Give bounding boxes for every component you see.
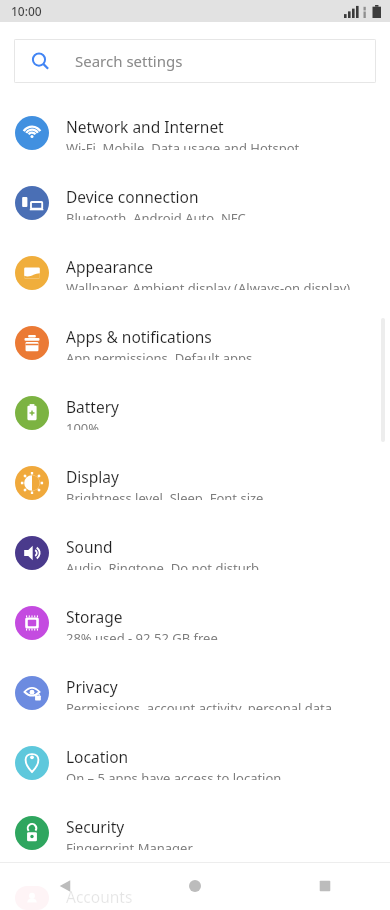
button[interactable]: Display [0, 466, 390, 500]
staticText: Wi-Fi, Mobile, Data usage and Hotspot [66, 139, 300, 150]
button[interactable]: Battery [0, 396, 390, 430]
button[interactable]: Appearance [0, 256, 390, 290]
staticText: 28% used - 92.52 GB free [66, 629, 218, 640]
staticText: Display [66, 466, 119, 487]
staticText: Network and Internet [66, 116, 224, 137]
staticText: Battery [66, 396, 120, 417]
button[interactable]: Location [0, 746, 390, 780]
staticText: Permissions, account activity, personal … [66, 699, 332, 710]
staticText: Security [66, 816, 125, 837]
button[interactable]: Recents [260, 862, 390, 910]
staticText: Brightness level, Sleep, Font size [66, 489, 264, 500]
button[interactable]: Network and Internet [0, 116, 390, 150]
staticText: Apps & notifications [66, 326, 212, 347]
button[interactable]: Privacy [0, 676, 390, 710]
button[interactable]: Storage [0, 606, 390, 640]
staticText: 10:00 [11, 3, 42, 19]
staticText: Appearance [66, 256, 153, 277]
button[interactable]: Search settings [14, 39, 376, 83]
staticText: 100% [66, 419, 100, 430]
staticText: Privacy [66, 676, 118, 697]
staticText: Device connection [66, 186, 199, 207]
button[interactable]: Sound [0, 536, 390, 570]
button[interactable]: Home [130, 862, 260, 910]
button[interactable]: Device connection [0, 186, 390, 220]
staticText: Fingerprint Manager [66, 839, 193, 850]
button[interactable]: Back [0, 862, 130, 910]
staticText: On – 5 apps have access to location [66, 769, 282, 780]
staticText: App permissions, Default apps [66, 349, 253, 360]
staticText: Accounts [66, 886, 133, 907]
button[interactable]: Apps & notifications [0, 326, 390, 360]
staticText: Location [66, 746, 129, 767]
staticText: Audio, Ringtone, Do not disturb [66, 559, 260, 570]
staticText: Wallpaper, Ambient display (Always-on di… [66, 279, 351, 290]
staticText: Bluetooth, Android Auto, NFC [66, 209, 246, 220]
staticText: Sound [66, 536, 113, 557]
staticText: Search settings [75, 51, 183, 71]
staticText: Storage [66, 606, 123, 627]
button[interactable]: Accounts [0, 886, 390, 910]
button[interactable]: Security [0, 816, 390, 850]
